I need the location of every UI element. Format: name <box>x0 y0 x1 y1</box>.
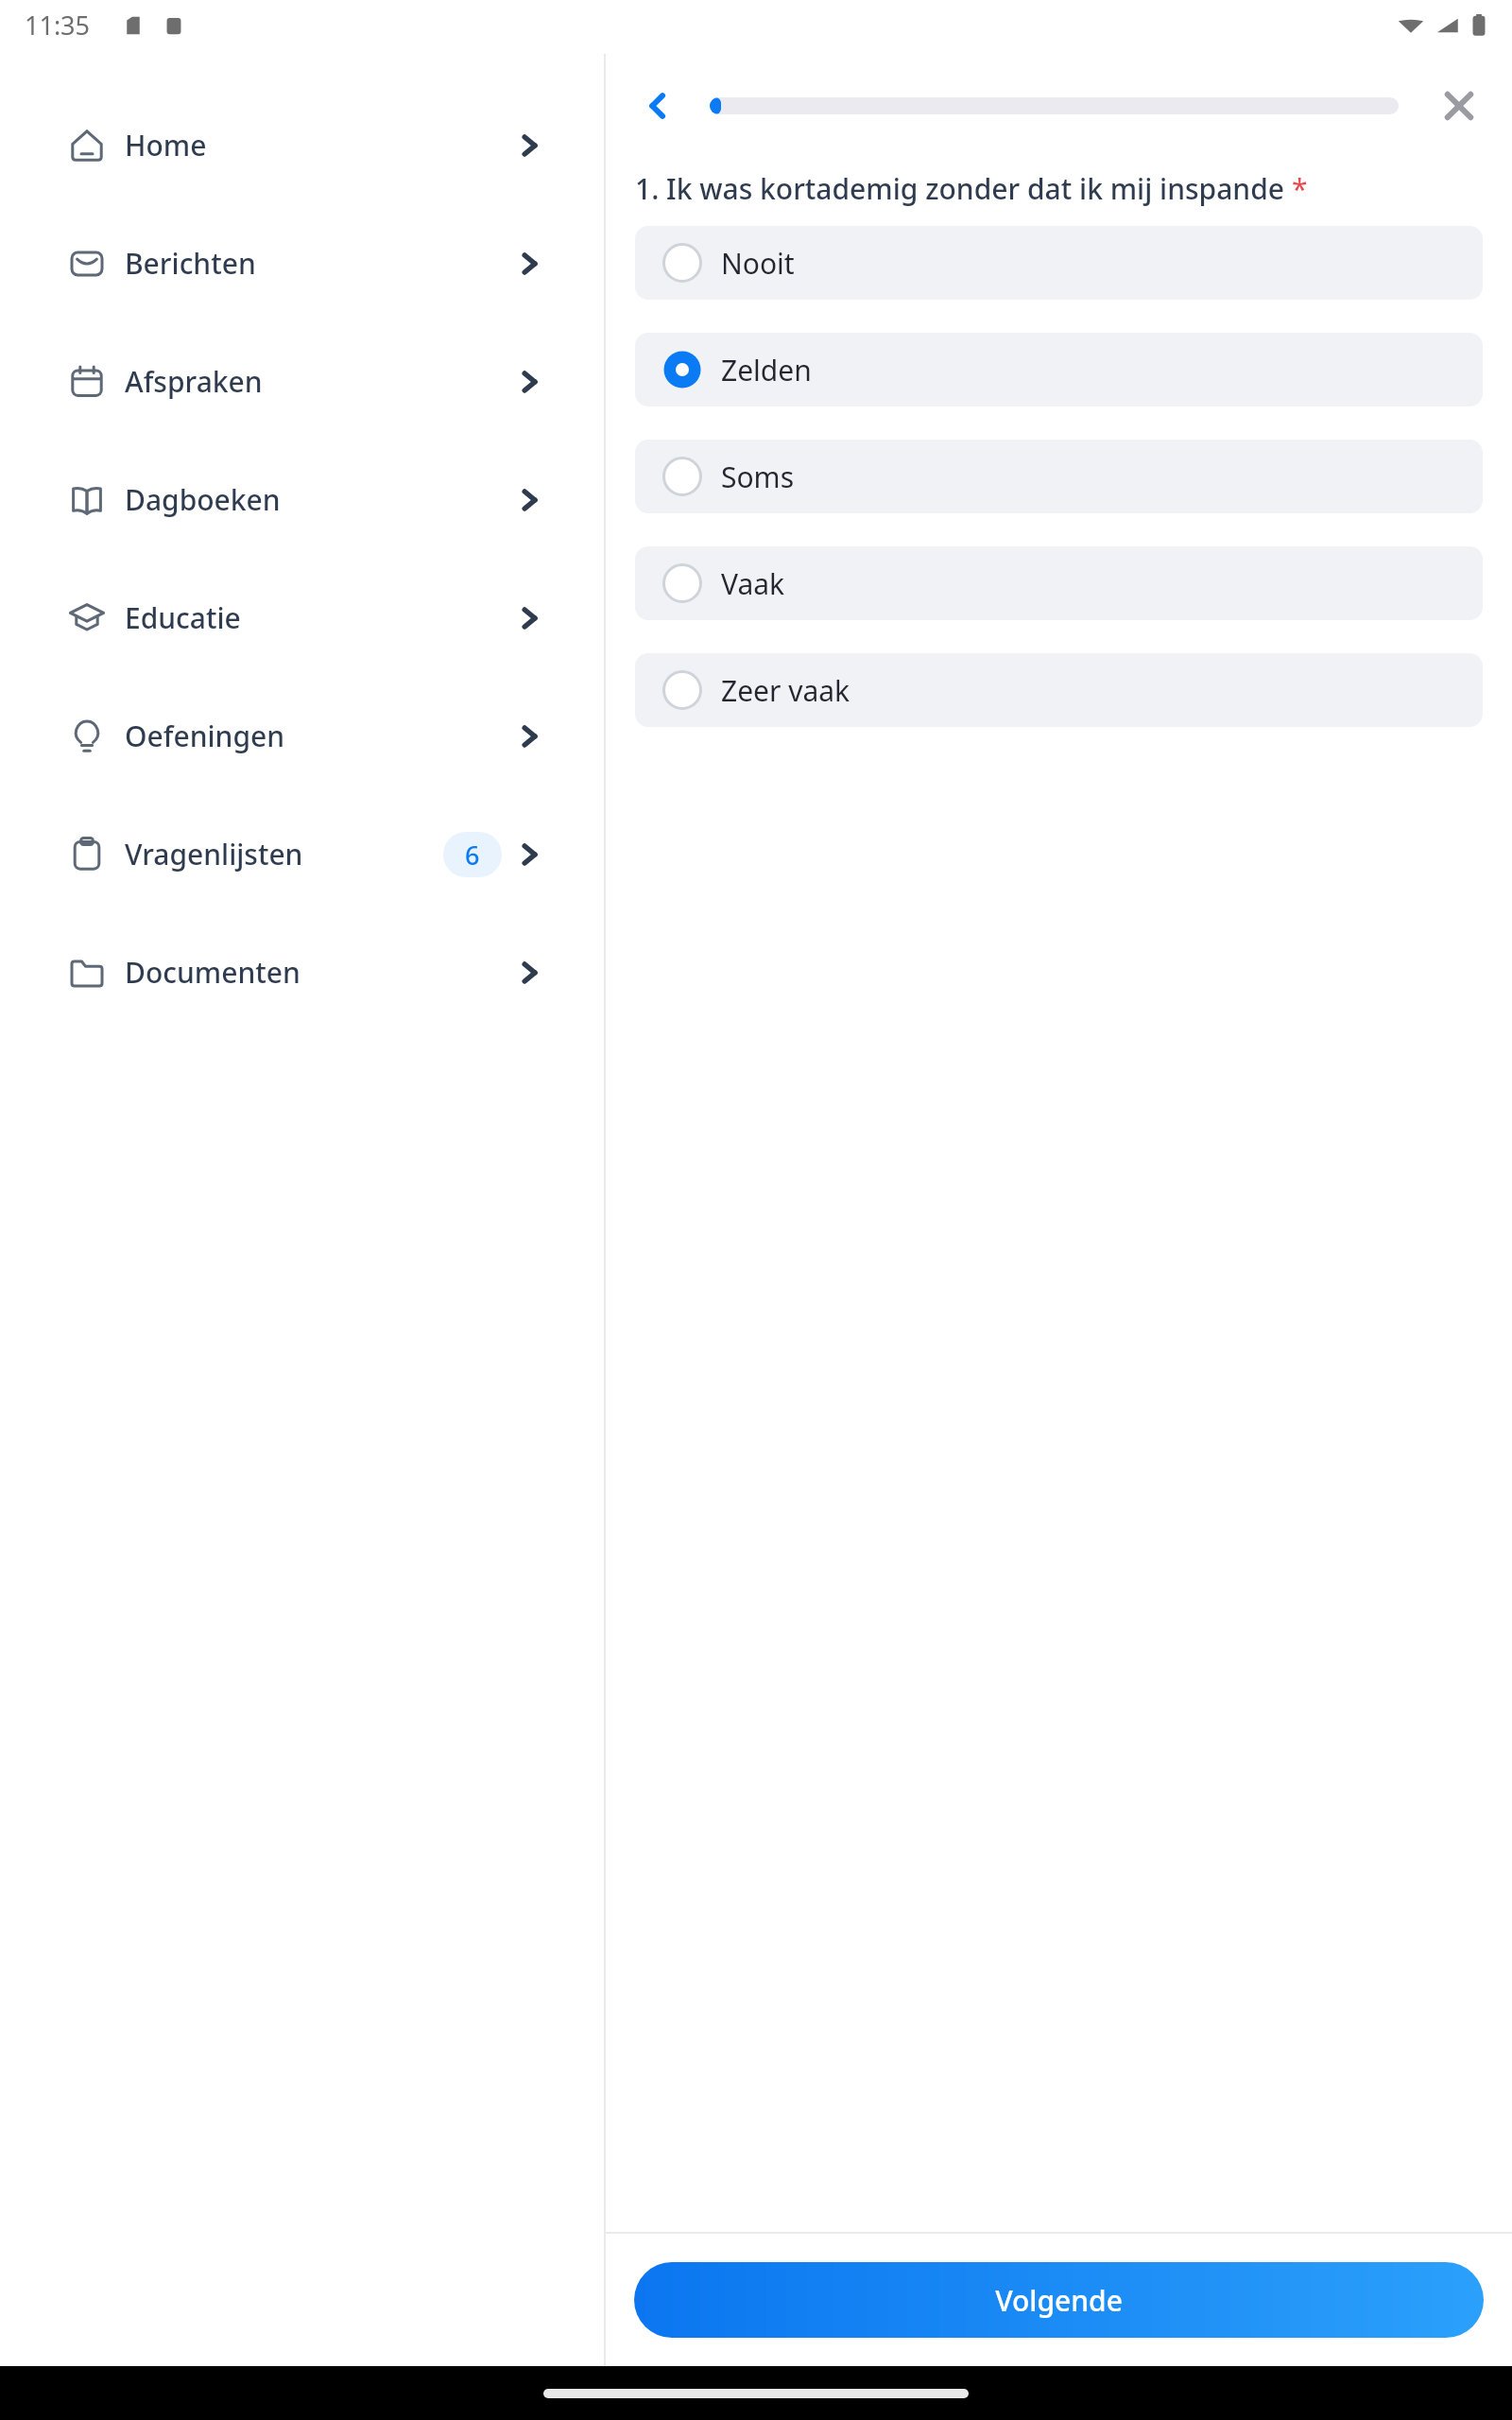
staticText: Dagboeken <box>125 480 281 519</box>
staticText: Oefeningen <box>125 717 285 755</box>
staticText: Vaak <box>721 564 785 603</box>
button[interactable]: Zeer vaak <box>635 653 1483 727</box>
button[interactable]: Berichten <box>0 204 604 322</box>
staticText: Educatie <box>125 598 241 637</box>
staticText: Vragenlijsten <box>125 835 303 873</box>
staticText: 1. Ik was kortademig zonder dat ik mij i… <box>635 169 1292 208</box>
staticText: Afspraken <box>125 362 263 401</box>
button[interactable]: Educatie <box>0 559 604 677</box>
staticText: 6 <box>465 838 480 873</box>
staticText: * <box>1292 169 1308 208</box>
staticText: Home <box>125 126 207 164</box>
button[interactable]: Vaak <box>635 546 1483 620</box>
staticText: Zeer vaak <box>721 671 850 710</box>
staticText: 11:35 <box>25 8 91 43</box>
button[interactable]: Close <box>1425 72 1493 140</box>
staticText: Soms <box>721 458 795 496</box>
button[interactable]: Home <box>0 86 604 204</box>
button[interactable]: Soms <box>635 440 1483 513</box>
staticText: Berichten <box>125 244 256 283</box>
button[interactable]: Vragenlijsten <box>0 795 604 913</box>
button[interactable]: Back <box>625 72 693 140</box>
staticText: Zelden <box>721 351 812 389</box>
staticText: Nooit <box>721 244 795 283</box>
button[interactable]: Documenten <box>0 913 604 1031</box>
staticText: Volgende <box>995 2281 1123 2320</box>
staticText: Documenten <box>125 953 301 992</box>
button[interactable]: Volgende <box>634 2262 1484 2338</box>
button[interactable]: Dagboeken <box>0 441 604 559</box>
button[interactable]: Afspraken <box>0 322 604 441</box>
button[interactable]: Zelden <box>635 333 1483 406</box>
button[interactable]: Oefeningen <box>0 677 604 795</box>
button[interactable]: Nooit <box>635 226 1483 300</box>
